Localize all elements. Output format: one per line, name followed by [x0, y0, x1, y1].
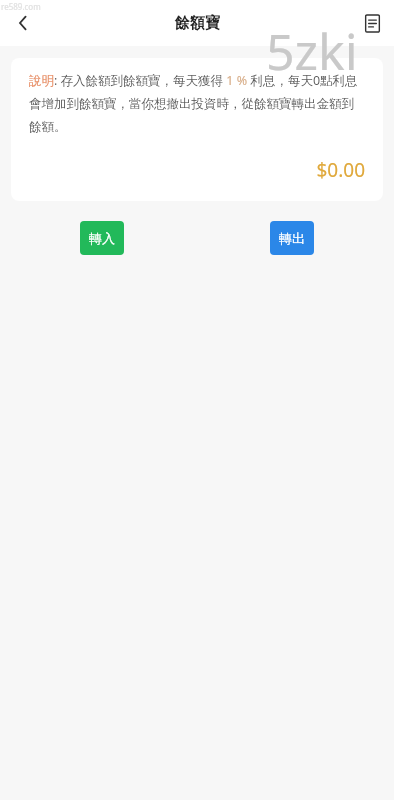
button[interactable]: Back [0, 0, 46, 46]
staticText: 轉入 [89, 230, 115, 246]
staticText: 說明: 存入餘額到餘額寶，每天獲得 1 % 利息，每天0點利息會增加到餘額寶，當… [29, 72, 365, 135]
button[interactable]: 轉入 [80, 221, 124, 255]
button[interactable]: 轉出 [270, 221, 314, 255]
staticText: 5zki [266, 17, 358, 85]
staticText: 轉出 [279, 230, 305, 246]
staticText: 餘額寶 [175, 14, 220, 33]
staticText: re589.com [1, 1, 41, 12]
button[interactable]: Records [350, 1, 394, 45]
staticText: $0.00 [29, 157, 365, 183]
